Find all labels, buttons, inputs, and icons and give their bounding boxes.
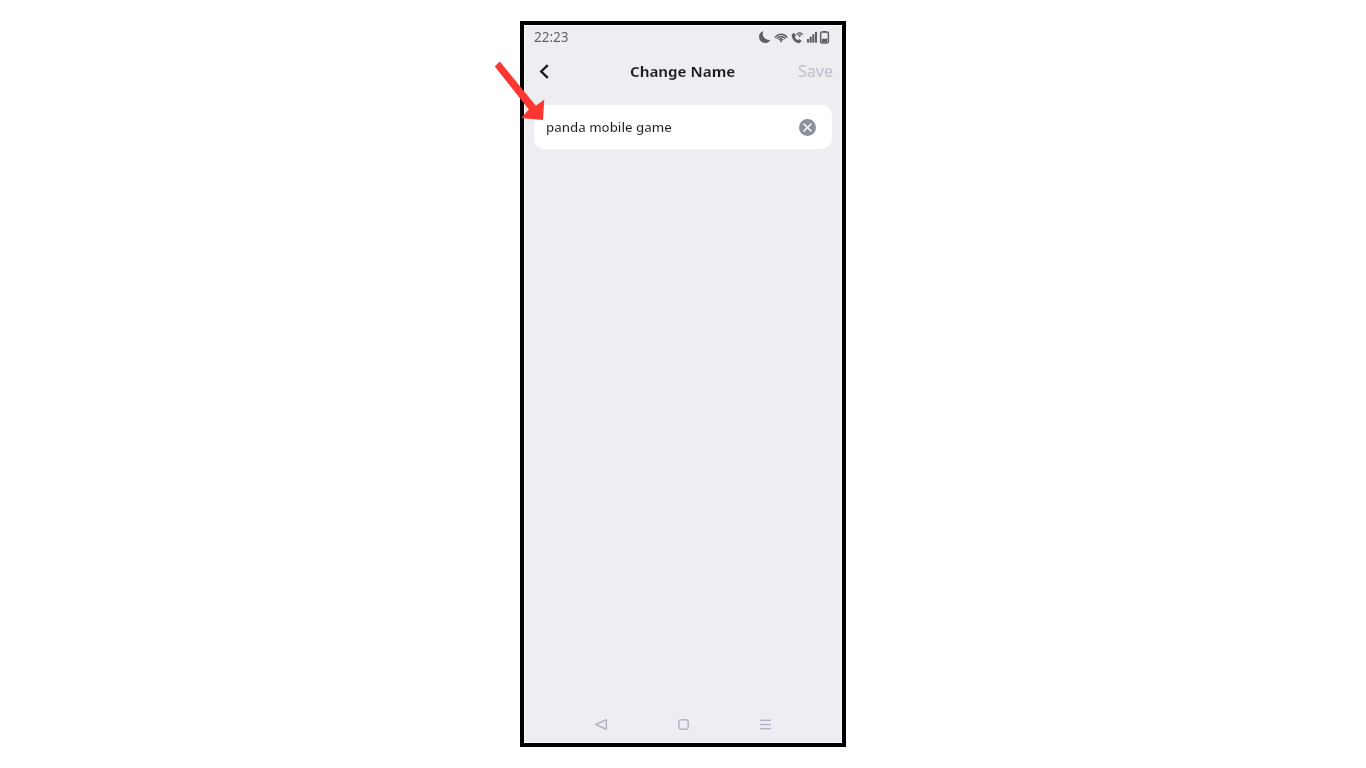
button[interactable]: Home	[659, 706, 707, 742]
button[interactable]: panda mobile game	[534, 105, 832, 149]
button[interactable]: Back	[526, 53, 562, 89]
staticText: Save	[798, 60, 833, 82]
staticText: Change Name	[630, 61, 736, 81]
button[interactable]: Back	[577, 706, 625, 742]
button[interactable]: Clear text	[799, 119, 816, 136]
staticText: panda mobile game	[546, 118, 672, 136]
staticText: 22:23	[534, 28, 569, 46]
button[interactable]: Recent apps	[741, 706, 789, 742]
button[interactable]: Save	[786, 50, 841, 92]
